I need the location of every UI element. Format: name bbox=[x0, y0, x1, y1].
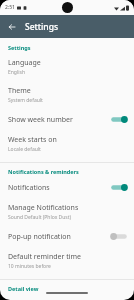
button[interactable]: Show description bbox=[0, 294, 134, 300]
staticText: Locale default bbox=[8, 146, 41, 153]
button[interactable]: Default reminder time bbox=[0, 247, 134, 275]
button[interactable]: Theme bbox=[0, 81, 134, 109]
staticText: 2:51 bbox=[5, 4, 15, 11]
button[interactable]: Pop-up notification bbox=[0, 226, 134, 247]
staticText: Settings bbox=[25, 21, 59, 33]
button[interactable]: Show week number bbox=[0, 109, 134, 130]
staticText: Sound Default (Phlox Dust) bbox=[8, 214, 72, 221]
staticText: Notifications & reminders bbox=[8, 168, 79, 175]
staticText: Pop-up notification bbox=[8, 232, 71, 242]
button[interactable]: Notifications bbox=[0, 177, 134, 198]
staticText: English bbox=[8, 69, 26, 76]
staticText: Week starts on bbox=[8, 135, 57, 145]
button[interactable]: Disabled bbox=[109, 231, 129, 242]
staticText: Manage Notifications bbox=[8, 203, 79, 213]
button[interactable]: Enabled bbox=[109, 114, 129, 125]
staticText: Settings bbox=[8, 44, 31, 51]
staticText: Default reminder time bbox=[8, 252, 82, 262]
staticText: System default bbox=[8, 97, 43, 104]
button[interactable]: Language bbox=[0, 53, 134, 81]
button[interactable]: Manage Notifications bbox=[0, 198, 134, 226]
staticText: 10 minutes before bbox=[8, 263, 51, 270]
button[interactable]: Week starts on bbox=[0, 130, 134, 158]
staticText: Show week number bbox=[8, 115, 73, 125]
button[interactable]: Back bbox=[3, 18, 20, 35]
staticText: Theme bbox=[8, 86, 31, 96]
staticText: Notifications bbox=[8, 183, 50, 193]
staticText: Detail view bbox=[8, 285, 39, 292]
staticText: Language bbox=[8, 58, 41, 68]
button[interactable]: Enabled bbox=[109, 182, 129, 193]
